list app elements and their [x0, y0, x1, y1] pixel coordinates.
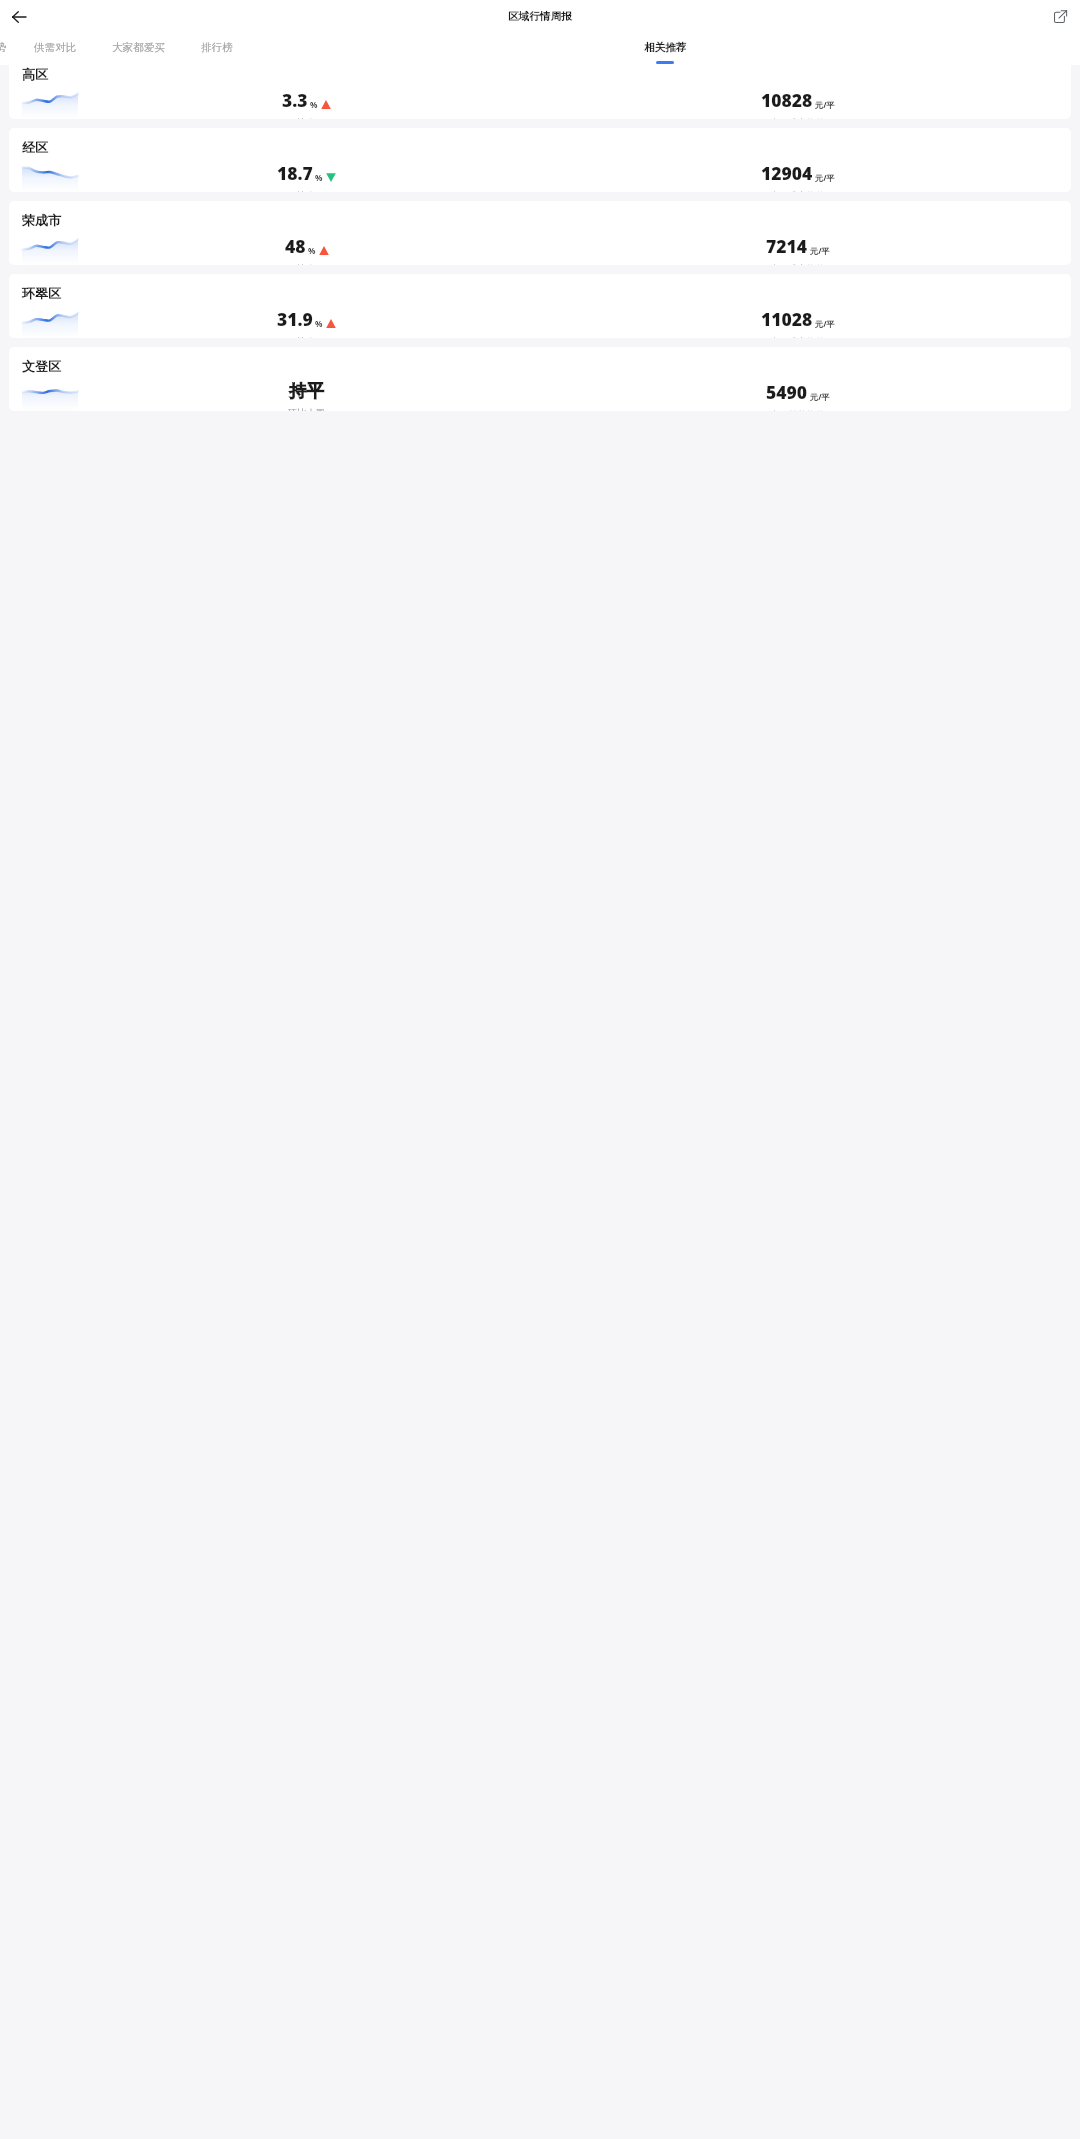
- staticText: 元/平: [815, 172, 835, 183]
- staticText: 本周成交均价: [770, 263, 826, 265]
- staticText: 31.9: [277, 307, 313, 331]
- staticText: 区域行情周报: [508, 10, 572, 23]
- staticText: 环比上周: [288, 263, 325, 265]
- staticText: 环比上周: [288, 190, 325, 192]
- staticText: 势: [0, 41, 7, 54]
- staticText: 经区: [22, 139, 48, 155]
- staticText: 高区: [22, 66, 48, 82]
- staticText: 5490: [766, 380, 808, 404]
- staticText: 本周成交均价: [770, 190, 826, 192]
- staticText: 本周成交均价: [770, 117, 826, 119]
- staticText: 18.7: [277, 161, 313, 185]
- staticText: 排行榜: [201, 41, 233, 54]
- staticText: 供需对比: [34, 41, 77, 54]
- button[interactable]: 排行榜: [184, 32, 250, 65]
- staticText: 48: [285, 234, 306, 258]
- staticText: %: [315, 172, 323, 183]
- button[interactable]: Back: [4, 2, 33, 31]
- staticText: 环比上周: [288, 117, 325, 119]
- button[interactable]: 势: [0, 32, 17, 65]
- staticText: 环比上周: [288, 407, 325, 411]
- staticText: 本周挂牌均价: [770, 409, 826, 411]
- button[interactable]: 供需对比: [17, 32, 93, 65]
- staticText: 文登区: [22, 358, 61, 374]
- button[interactable]: 文登区: [9, 347, 1071, 411]
- staticText: %: [315, 318, 323, 329]
- staticText: 环翠区: [22, 285, 61, 301]
- button[interactable]: 相关推荐: [250, 32, 1080, 65]
- staticText: 持平: [289, 380, 324, 402]
- staticText: 环比上周: [288, 336, 325, 338]
- staticText: %: [310, 99, 318, 110]
- staticText: 7214: [766, 234, 808, 258]
- staticText: %: [308, 245, 316, 256]
- staticText: 元/平: [815, 99, 835, 110]
- button[interactable]: 经区: [9, 128, 1071, 192]
- staticText: 相关推荐: [644, 41, 687, 54]
- button[interactable]: 高区: [9, 65, 1071, 119]
- staticText: 本周成交均价: [770, 336, 826, 338]
- button[interactable]: 环翠区: [9, 274, 1071, 338]
- staticText: 12904: [761, 161, 813, 185]
- button[interactable]: Share: [1047, 3, 1073, 29]
- staticText: 元/平: [815, 318, 835, 329]
- staticText: 元/平: [810, 391, 830, 402]
- staticText: 元/平: [810, 245, 830, 256]
- staticText: 3.3: [282, 88, 308, 112]
- staticText: 10828: [761, 88, 813, 112]
- staticText: 荣成市: [22, 212, 61, 228]
- button[interactable]: 荣成市: [9, 201, 1071, 265]
- staticText: 11028: [761, 307, 813, 331]
- staticText: 大家都爱买: [112, 41, 165, 54]
- button[interactable]: 大家都爱买: [93, 32, 184, 65]
